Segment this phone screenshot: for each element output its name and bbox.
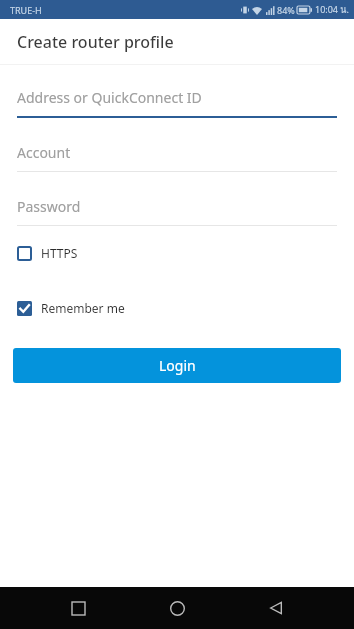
- staticText: TRUE-H: [10, 4, 42, 16]
- button[interactable]: Password: [17, 197, 337, 226]
- staticText: Create router profile: [17, 31, 174, 53]
- staticText: Remember me: [41, 300, 125, 316]
- staticText: 10:04 น.: [315, 3, 349, 17]
- staticText: Password: [17, 197, 81, 216]
- button[interactable]: Back: [255, 587, 297, 629]
- staticText: Login: [159, 356, 196, 375]
- button[interactable]: Login: [13, 348, 341, 383]
- button[interactable]: Address or QuickConnect ID: [17, 88, 337, 118]
- staticText: 84%: [277, 4, 295, 16]
- button[interactable]: Account: [17, 143, 337, 172]
- button[interactable]: Remember me: [17, 300, 337, 316]
- staticText: HTTPS: [41, 245, 78, 261]
- button[interactable]: HTTPS: [17, 245, 337, 261]
- staticText: Account: [17, 143, 71, 162]
- button[interactable]: Recent apps: [57, 587, 99, 629]
- staticText: Address or QuickConnect ID: [17, 88, 202, 107]
- button[interactable]: Home: [156, 587, 198, 629]
